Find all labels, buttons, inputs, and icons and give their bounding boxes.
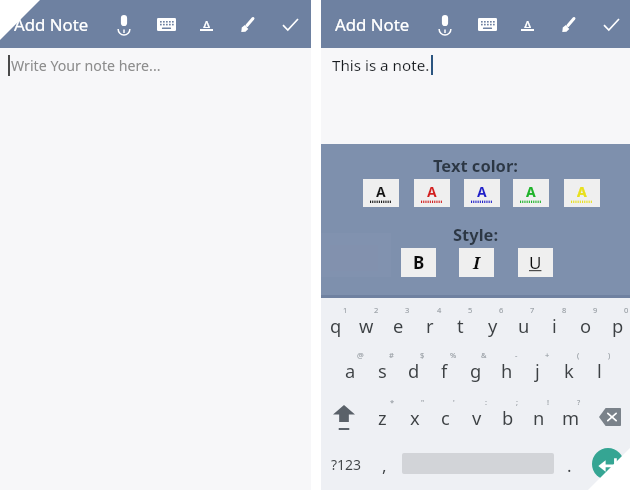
button[interactable]: b bbox=[492, 395, 523, 439]
staticText: + bbox=[545, 350, 550, 360]
button[interactable]: z bbox=[367, 395, 398, 439]
button[interactable]: yyyyyyyyy bbox=[564, 179, 600, 207]
staticText: t bbox=[457, 313, 464, 338]
staticText: U bbox=[529, 251, 542, 274]
staticText: h bbox=[501, 358, 513, 383]
staticText: # bbox=[389, 350, 394, 360]
staticText: 5 bbox=[468, 305, 473, 315]
staticText: n bbox=[533, 405, 545, 430]
staticText: ? bbox=[577, 397, 581, 407]
staticText: z bbox=[378, 405, 387, 430]
button[interactable]: Enter bbox=[592, 448, 624, 480]
button[interactable]: Voice input bbox=[104, 0, 144, 48]
button[interactable]: m bbox=[555, 395, 586, 439]
button[interactable]: q bbox=[320, 303, 351, 347]
staticText: v bbox=[472, 405, 482, 430]
button[interactable]: p bbox=[602, 303, 630, 347]
button[interactable]: r bbox=[414, 303, 445, 347]
staticText: Write Your note here... bbox=[11, 56, 161, 75]
button[interactable]: Draw bbox=[548, 0, 588, 48]
button[interactable]: n bbox=[523, 395, 554, 439]
button[interactable]: . bbox=[557, 443, 581, 487]
button[interactable]: f bbox=[429, 348, 460, 392]
button[interactable]: Save note bbox=[270, 0, 310, 48]
staticText: w bbox=[359, 313, 374, 338]
button[interactable]: w bbox=[351, 303, 382, 347]
staticText: ' bbox=[453, 397, 455, 407]
button[interactable]: ggggggggg bbox=[513, 179, 549, 207]
staticText: e bbox=[393, 313, 404, 338]
button[interactable]: d bbox=[398, 348, 429, 392]
staticText: d bbox=[408, 358, 420, 383]
button[interactable]: ?123 bbox=[322, 442, 370, 486]
button[interactable]: I bbox=[459, 248, 494, 277]
button[interactable]: u bbox=[508, 303, 539, 347]
staticText: b bbox=[502, 405, 514, 430]
staticText: A bbox=[376, 182, 386, 201]
button[interactable]: e bbox=[383, 303, 414, 347]
staticText: ! bbox=[547, 397, 550, 407]
staticText: l bbox=[597, 358, 602, 383]
staticText: $ bbox=[420, 350, 425, 360]
button[interactable]: l bbox=[584, 348, 615, 392]
staticText: c bbox=[441, 405, 450, 430]
staticText: % bbox=[450, 350, 457, 360]
staticText: ; bbox=[516, 397, 519, 407]
button[interactable]: Text color bbox=[507, 0, 547, 48]
staticText: r bbox=[426, 313, 434, 338]
button[interactable]: h bbox=[491, 348, 522, 392]
button[interactable]: Voice input bbox=[425, 0, 465, 48]
button[interactable]: Shift bbox=[324, 396, 364, 440]
staticText: Text color: bbox=[433, 154, 518, 176]
staticText: 0 bbox=[624, 305, 629, 315]
button[interactable]: Add Note bbox=[335, 0, 410, 48]
button[interactable]: aaaaaaaaa bbox=[363, 179, 399, 207]
button[interactable]: Save note bbox=[591, 0, 630, 48]
staticText: 3 bbox=[405, 305, 410, 315]
staticText: & bbox=[481, 350, 487, 360]
staticText: 4 bbox=[437, 305, 442, 315]
staticText: B bbox=[413, 251, 425, 274]
button[interactable]: i bbox=[539, 303, 570, 347]
button[interactable]: x bbox=[399, 395, 430, 439]
staticText: 2 bbox=[374, 305, 379, 315]
button[interactable]: rrrrrrrrr bbox=[414, 179, 450, 207]
button[interactable]: , bbox=[371, 443, 397, 487]
button[interactable]: t bbox=[445, 303, 476, 347]
staticText: 1 bbox=[343, 305, 348, 315]
button[interactable]: Keyboard bbox=[146, 0, 186, 48]
button[interactable]: Backspace bbox=[588, 395, 630, 439]
button[interactable]: g bbox=[460, 348, 491, 392]
button[interactable]: c bbox=[430, 395, 461, 439]
button[interactable]: U bbox=[518, 248, 553, 277]
staticText: : bbox=[485, 397, 488, 407]
staticText: ) bbox=[608, 350, 611, 360]
button[interactable]: bbbbbbbbb bbox=[464, 179, 500, 207]
staticText: i bbox=[552, 313, 557, 338]
staticText: @ bbox=[357, 350, 364, 360]
button[interactable]: Text color bbox=[186, 0, 226, 48]
button[interactable]: Add Note bbox=[14, 0, 89, 48]
button[interactable]: j bbox=[522, 348, 553, 392]
button[interactable]: v bbox=[461, 395, 492, 439]
staticText: j bbox=[535, 358, 540, 383]
staticText: - bbox=[515, 350, 518, 360]
staticText: o bbox=[580, 313, 592, 338]
button[interactable]: Draw bbox=[227, 0, 267, 48]
button[interactable]: k bbox=[553, 348, 584, 392]
staticText: x bbox=[410, 405, 420, 430]
staticText: p bbox=[612, 313, 624, 338]
staticText: " bbox=[421, 397, 425, 407]
button[interactable]: s bbox=[367, 348, 398, 392]
button[interactable]: o bbox=[570, 303, 601, 347]
button[interactable]: a bbox=[335, 348, 366, 392]
staticText: q bbox=[330, 313, 342, 338]
button[interactable]: y bbox=[477, 303, 508, 347]
button[interactable]: B bbox=[401, 248, 436, 277]
staticText: Style: bbox=[453, 223, 499, 245]
staticText: Add Note bbox=[335, 13, 410, 36]
button[interactable]: Keyboard bbox=[467, 0, 507, 48]
staticText: 6 bbox=[499, 305, 504, 315]
staticText: A bbox=[523, 15, 533, 28]
